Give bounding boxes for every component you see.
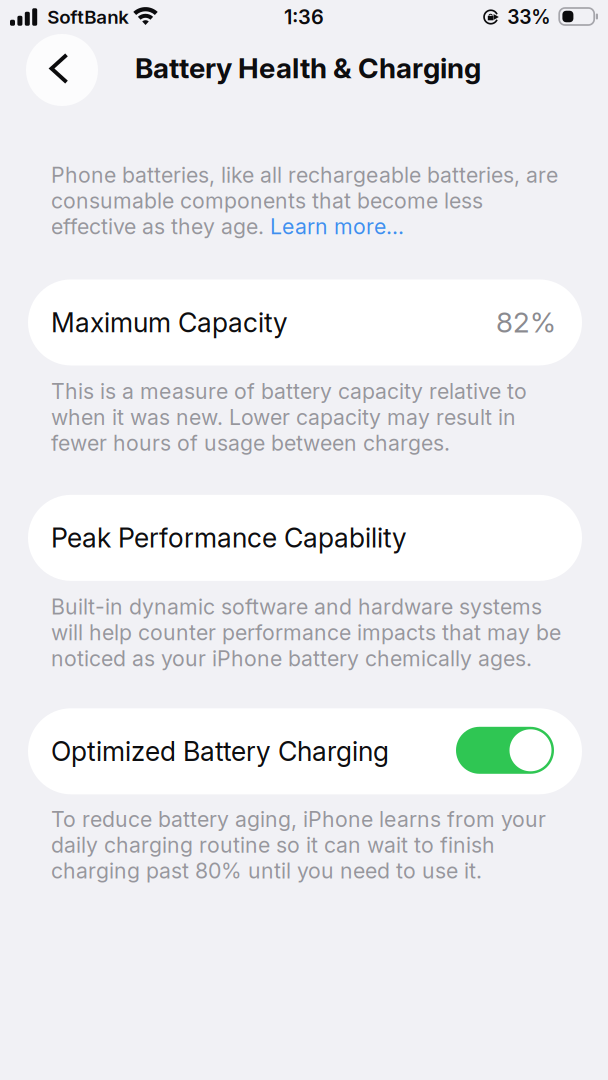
- staticText: 33%: [507, 5, 550, 29]
- button[interactable]: Peak Performance Capability: [28, 495, 582, 581]
- staticText: Built-in dynamic software and hardware s…: [51, 594, 561, 671]
- staticText: SoftBank: [47, 6, 129, 28]
- button[interactable]: Optimized Battery Charging: [456, 727, 554, 776]
- staticText: Peak Performance Capability: [51, 522, 407, 554]
- staticText: 1:36: [284, 5, 324, 29]
- button[interactable]: Maximum Capacity: [28, 279, 582, 365]
- staticText: Phone batteries, like all rechargeable b…: [51, 162, 558, 239]
- staticText: 82%: [496, 305, 556, 339]
- staticText: This is a measure of battery capacity re…: [51, 378, 527, 456]
- staticText: Battery Health & Charging: [135, 51, 481, 85]
- button[interactable]: Back: [26, 34, 98, 106]
- staticText: Maximum Capacity: [51, 306, 288, 339]
- staticText: Optimized Battery Charging: [51, 735, 389, 767]
- staticText: To reduce battery aging, iPhone learns f…: [51, 806, 546, 884]
